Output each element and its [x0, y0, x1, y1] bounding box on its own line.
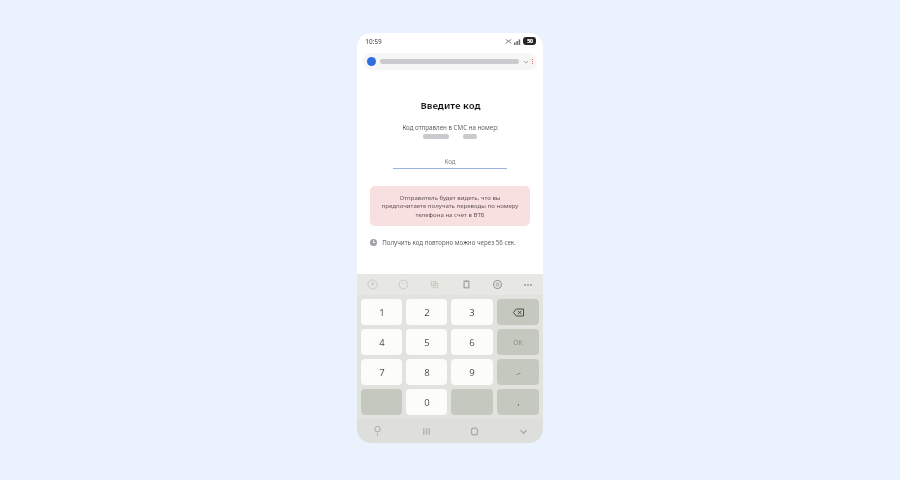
button[interactable]: Home: [463, 420, 485, 442]
button[interactable]: ,: [497, 389, 539, 415]
button[interactable]: Hide keyboard: [512, 420, 534, 442]
staticText: 2: [424, 306, 430, 319]
button[interactable]: Backspace: [497, 299, 539, 325]
button[interactable]: More options: [521, 278, 535, 292]
staticText: Получить код повторно можно через 56 сек…: [382, 238, 516, 246]
button[interactable]: Keyboard settings: [490, 277, 505, 292]
staticText: 6: [469, 336, 475, 349]
button[interactable]: Recent apps: [415, 420, 437, 442]
staticText: 5: [424, 336, 430, 349]
button[interactable]: Address bar: [363, 53, 537, 70]
button[interactable]: .-: [497, 359, 539, 385]
button[interactable]: Voice typing: [365, 277, 380, 292]
staticText: Код: [444, 157, 456, 165]
button[interactable]: OK: [497, 329, 539, 355]
staticText: 50: [527, 38, 533, 45]
staticText: Отправитель будет видеть, что вы предпоч…: [378, 193, 522, 219]
button[interactable]: 9: [451, 359, 493, 385]
button[interactable]: Clipboard: [459, 277, 474, 292]
button[interactable]: 2: [406, 299, 447, 325]
staticText: Код отправлен в СМС на номер:: [402, 123, 499, 131]
staticText: ,: [517, 397, 520, 407]
staticText: 0: [424, 396, 430, 409]
staticText: 10:59: [365, 37, 382, 46]
staticText: 7: [379, 366, 385, 379]
button[interactable]: 0: [406, 389, 447, 415]
button[interactable]: Emoji: [396, 277, 411, 292]
button[interactable]: Code input: [393, 157, 507, 169]
button[interactable]: 8: [406, 359, 447, 385]
button[interactable]: 5: [406, 329, 447, 355]
staticText: .-: [516, 367, 521, 377]
staticText: 3: [469, 306, 475, 319]
staticText: 4: [379, 336, 385, 349]
button[interactable]: Translate: [427, 277, 442, 292]
staticText: 1: [379, 306, 385, 319]
button[interactable]: 4: [361, 329, 402, 355]
staticText: Введите код: [420, 99, 481, 112]
button[interactable]: Voice input: [366, 420, 388, 442]
staticText: 8: [424, 366, 430, 379]
staticText: OK: [513, 338, 523, 347]
button[interactable]: 7: [361, 359, 402, 385]
staticText: 9: [469, 366, 475, 379]
button[interactable]: 3: [451, 299, 493, 325]
button[interactable]: 1: [361, 299, 402, 325]
button[interactable]: 6: [451, 329, 493, 355]
